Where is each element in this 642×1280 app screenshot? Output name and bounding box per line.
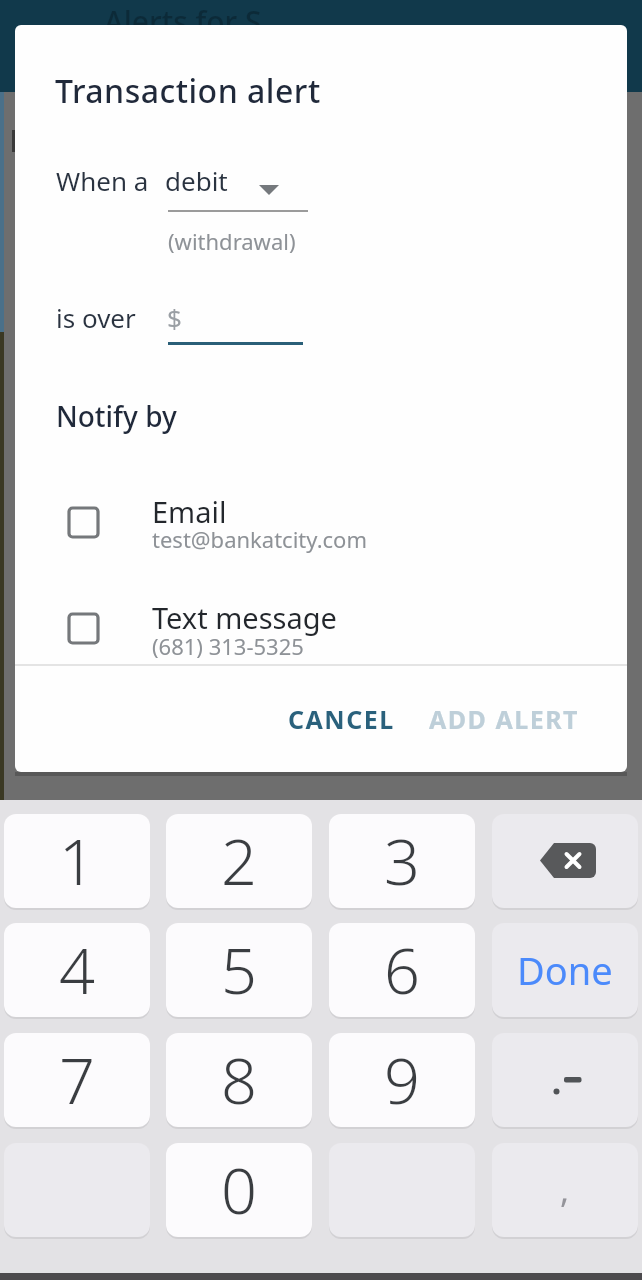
staticText: 2 xyxy=(221,818,257,904)
button[interactable]: CANCEL xyxy=(276,693,406,745)
staticText: test@bankatcity.com xyxy=(152,524,367,554)
staticText: Transaction alert xyxy=(55,69,321,113)
button[interactable]: Email xyxy=(55,492,385,570)
button[interactable]: , xyxy=(492,1143,638,1237)
button[interactable]: 7 xyxy=(4,1033,150,1127)
staticText: Alerts for S xyxy=(104,1,262,42)
button[interactable]: 2 xyxy=(166,814,312,908)
button[interactable]: 3 xyxy=(329,814,475,908)
button[interactable]: 6 xyxy=(329,923,475,1017)
button[interactable]: ADD ALERT xyxy=(419,693,589,745)
button[interactable]: 1 xyxy=(4,814,150,908)
button[interactable]: 0 xyxy=(166,1143,312,1237)
staticText: 9 xyxy=(384,1037,420,1123)
staticText: Email xyxy=(152,492,227,531)
staticText: Notify by xyxy=(56,397,177,435)
staticText: 7 xyxy=(59,1037,95,1123)
staticText: 3 xyxy=(384,818,420,904)
button[interactable] xyxy=(492,814,638,908)
staticText: Done xyxy=(517,944,613,996)
staticText: $ xyxy=(167,300,182,335)
staticText: 6 xyxy=(384,927,420,1013)
button[interactable]: 8 xyxy=(166,1033,312,1127)
staticText: (withdrawal) xyxy=(168,226,296,256)
button[interactable]: 4 xyxy=(4,923,150,1017)
staticText: is over xyxy=(56,300,136,335)
staticText: ADD ALERT xyxy=(429,702,580,736)
staticText: 0 xyxy=(221,1147,257,1233)
staticText: Text message xyxy=(152,598,337,637)
button[interactable]: Done xyxy=(492,923,638,1017)
staticText: , xyxy=(560,1167,570,1213)
button[interactable]: 5 xyxy=(166,923,312,1017)
staticText: debit xyxy=(165,163,228,198)
button[interactable]: Text message xyxy=(55,598,385,676)
button[interactable]: debit xyxy=(165,155,325,211)
button[interactable]: 9 xyxy=(329,1033,475,1127)
staticText: 1 xyxy=(59,818,95,904)
staticText: CANCEL xyxy=(288,702,395,736)
staticText: 5 xyxy=(221,927,257,1013)
button[interactable] xyxy=(492,1033,638,1127)
staticText: 8 xyxy=(221,1037,257,1123)
staticText: (681) 313-5325 xyxy=(152,631,304,661)
staticText: 4 xyxy=(59,927,95,1013)
staticText: When a xyxy=(56,163,149,198)
